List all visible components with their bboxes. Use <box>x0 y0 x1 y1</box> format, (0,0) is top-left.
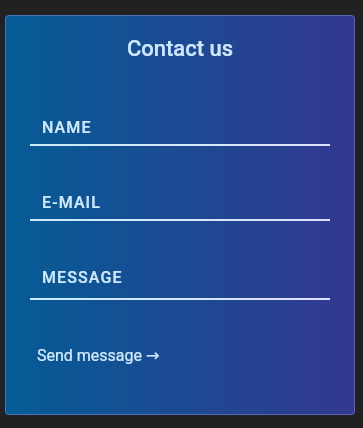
staticText: Send message → <box>37 346 160 365</box>
staticText: NAME <box>42 118 92 137</box>
button[interactable]: Send message → <box>30 337 170 369</box>
button[interactable]: E-MAIL <box>30 186 330 226</box>
staticText: Contact us <box>30 36 330 62</box>
button[interactable]: MESSAGE <box>30 261 330 305</box>
staticText: MESSAGE <box>42 268 123 287</box>
staticText: E-MAIL <box>42 193 101 212</box>
button[interactable]: NAME <box>30 111 330 151</box>
